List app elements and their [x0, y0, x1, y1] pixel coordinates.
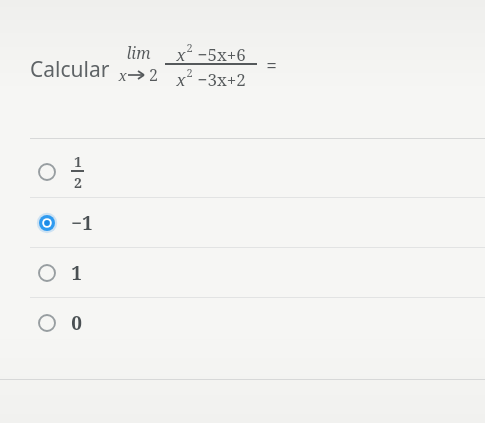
button[interactable]: 1	[0, 248, 485, 297]
staticText: −1	[71, 210, 93, 236]
staticText: 2	[186, 65, 193, 80]
button[interactable]: 1	[0, 146, 485, 197]
staticText: x	[118, 65, 127, 85]
staticText: 2	[149, 64, 158, 86]
staticText: 2	[74, 173, 82, 192]
staticText: 0	[71, 310, 82, 336]
button[interactable]: 0	[0, 298, 485, 347]
staticText: 2	[186, 40, 193, 55]
staticText: =	[266, 53, 277, 79]
staticText: 1	[71, 260, 82, 286]
button[interactable]: −1	[0, 198, 485, 247]
staticText: Calcular	[30, 55, 110, 84]
staticText: x	[176, 68, 186, 91]
staticText: x	[176, 43, 186, 66]
staticText: lim	[126, 42, 151, 64]
staticText: −5x+6	[193, 43, 246, 66]
staticText: −3x+2	[193, 68, 246, 91]
staticText: 1	[74, 152, 82, 171]
